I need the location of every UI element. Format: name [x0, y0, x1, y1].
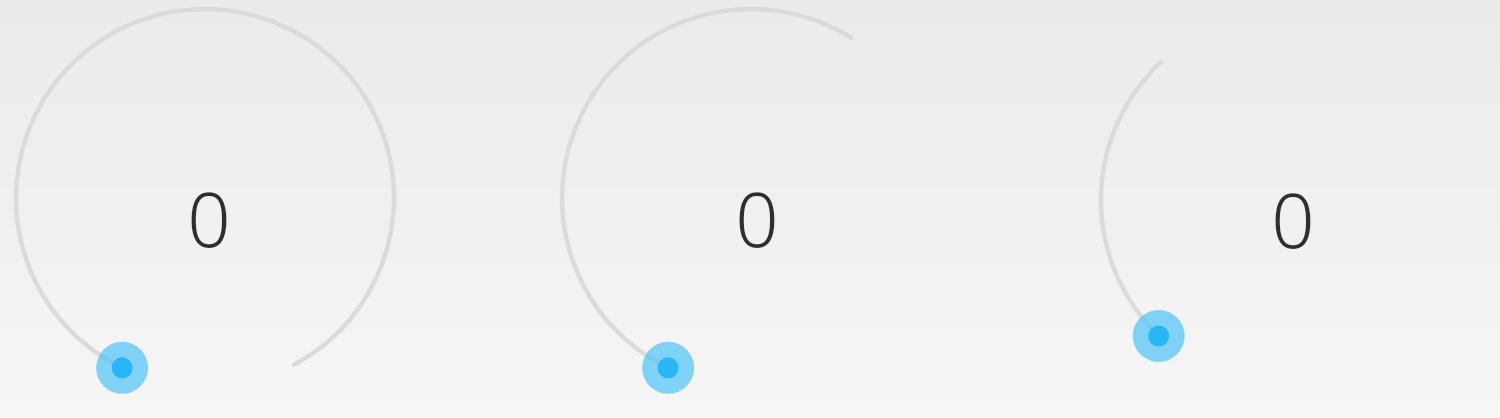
staticText: 0	[735, 166, 779, 258]
button[interactable]: Circular slider 3, value 0	[1093, 3, 1487, 397]
button[interactable]: Circular slider 2, value 0	[554, 1, 948, 395]
button[interactable]: 0	[1238, 167, 1348, 259]
button[interactable]: 0	[702, 166, 812, 258]
button[interactable]: Circular slider 1, value 0	[8, 1, 402, 395]
staticText: 0	[187, 166, 231, 258]
staticText: 0	[1271, 167, 1315, 259]
button[interactable]: 0	[154, 166, 264, 258]
